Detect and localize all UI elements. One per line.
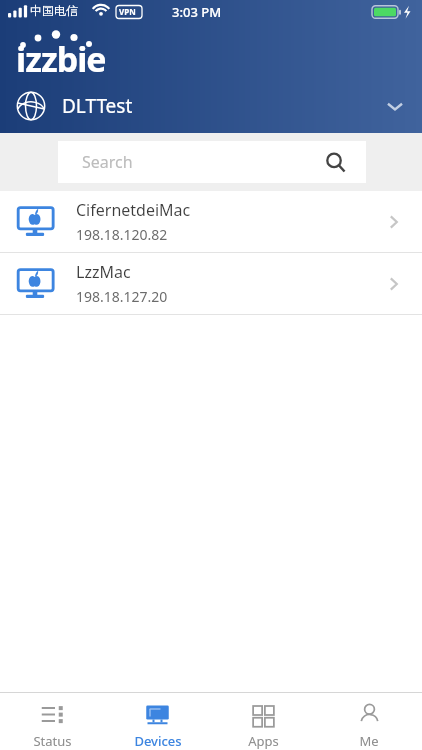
staticText: VPN	[119, 6, 136, 17]
button[interactable]: Status	[0, 692, 105, 750]
button[interactable]: DLTTest	[0, 82, 422, 130]
staticText: DLTTest	[62, 93, 133, 119]
button[interactable]: LzzMac	[0, 253, 422, 314]
staticText: izzbie	[16, 36, 106, 82]
staticText: Apps	[248, 732, 279, 750]
button[interactable]: Me	[316, 692, 422, 750]
other: Search	[325, 152, 346, 173]
button[interactable]: Search	[58, 141, 366, 183]
button[interactable]: Apps	[210, 692, 316, 750]
staticText: 198.18.120.82	[76, 225, 168, 244]
staticText: Me	[359, 732, 379, 750]
staticText: Status	[33, 732, 72, 750]
button[interactable]: CifernetdeiMac	[0, 191, 422, 252]
button[interactable]: Devices	[105, 692, 210, 750]
other: Expand network	[384, 95, 406, 117]
staticText: LzzMac	[76, 261, 131, 283]
staticText: 198.18.127.20	[76, 287, 168, 306]
staticText: Search	[82, 151, 133, 173]
staticText: 3:03 PM	[172, 3, 222, 21]
staticText: 中国电信	[30, 3, 78, 18]
staticText: Devices	[134, 732, 182, 750]
staticText: CifernetdeiMac	[76, 199, 191, 221]
